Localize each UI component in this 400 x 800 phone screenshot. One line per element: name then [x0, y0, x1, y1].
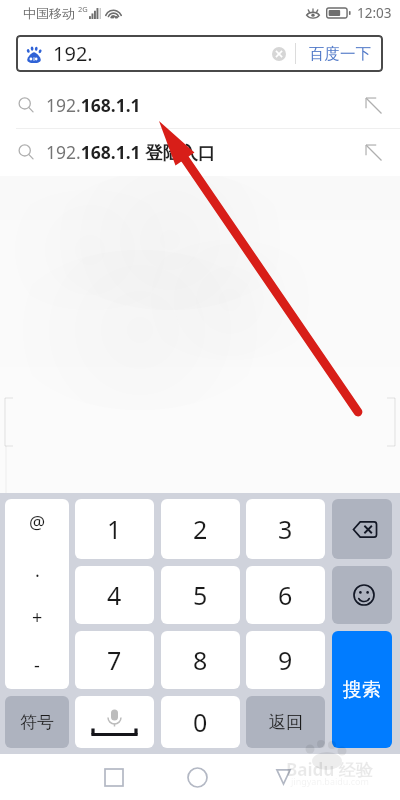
button[interactable]: 0 [161, 696, 240, 748]
staticText: 9 [278, 643, 293, 677]
button[interactable]: Fill in query [350, 129, 396, 175]
staticText: 搜索 [343, 678, 381, 702]
staticText: 返回 [269, 712, 303, 733]
button[interactable]: 4 [75, 566, 154, 624]
button[interactable]: Emoji [332, 566, 392, 624]
staticText: 192. [53, 40, 93, 67]
button[interactable]: 192.168.1.1 登陆入口 [0, 129, 400, 175]
staticText: jingyan.baidu.com [291, 775, 369, 787]
staticText: 4 [107, 578, 122, 612]
button[interactable]: Back [259, 755, 307, 799]
button[interactable]: @ [5, 499, 69, 689]
staticText: 12:03 [357, 4, 392, 22]
button[interactable]: 9 [246, 631, 325, 689]
staticText: 2G [78, 4, 88, 14]
button[interactable]: Clear [263, 35, 295, 72]
staticText: 6 [278, 578, 293, 612]
staticText: 0 [193, 705, 208, 739]
button[interactable]: Voice input and space [75, 696, 154, 748]
button[interactable]: Backspace [332, 499, 392, 559]
staticText: - [34, 653, 40, 678]
staticText: 2 [193, 512, 208, 546]
button[interactable]: 8 [161, 631, 240, 689]
staticText: 百度一下 [309, 44, 371, 64]
button[interactable]: 2 [161, 499, 240, 559]
button[interactable]: 1 [75, 499, 154, 559]
staticText: + [32, 605, 43, 630]
button[interactable]: 搜索 [332, 631, 392, 748]
staticText: 3 [278, 512, 293, 546]
button[interactable]: Home [173, 755, 221, 799]
staticText: Baidu 经验 [286, 758, 373, 781]
staticText: 1 [107, 512, 122, 546]
staticText: 8 [193, 643, 208, 677]
staticText: 192.168.1.1 [46, 93, 141, 117]
staticText: 7 [107, 643, 122, 677]
staticText: @ [29, 510, 46, 535]
button[interactable]: 3 [246, 499, 325, 559]
button[interactable]: 返回 [246, 696, 325, 748]
button[interactable]: 5 [161, 566, 240, 624]
button[interactable]: 符号 [5, 696, 69, 748]
button[interactable]: Recent apps [90, 755, 138, 799]
staticText: 192.168.1.1 登陆入口 [46, 140, 216, 164]
staticText: 中国移动 [23, 5, 75, 21]
button[interactable]: 192.168.1.1 [0, 82, 400, 128]
button[interactable]: 百度一下 [296, 35, 383, 72]
staticText: . [35, 558, 40, 583]
button[interactable]: Fill in query [350, 82, 396, 128]
button[interactable]: 6 [246, 566, 325, 624]
staticText: 符号 [20, 712, 54, 733]
staticText: 5 [193, 578, 208, 612]
button[interactable]: 7 [75, 631, 154, 689]
